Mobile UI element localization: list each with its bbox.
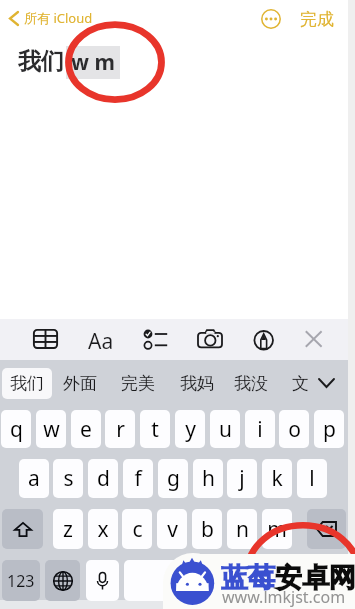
staticText: y xyxy=(185,415,196,444)
staticText: s xyxy=(63,464,74,493)
button[interactable]: 所有 iCloud xyxy=(6,6,96,30)
staticText: o xyxy=(288,415,301,444)
button[interactable]: Markup xyxy=(250,326,281,353)
button[interactable]: j xyxy=(227,459,257,498)
button[interactable]: u xyxy=(210,410,240,448)
staticText: r xyxy=(116,415,125,444)
button[interactable]: 文 xyxy=(288,368,313,399)
staticText: z xyxy=(63,515,73,544)
button[interactable]: m xyxy=(262,509,292,549)
button[interactable]: p xyxy=(314,410,344,448)
button[interactable]: a xyxy=(19,459,49,498)
button[interactable]: l xyxy=(297,459,327,498)
staticText: e xyxy=(80,415,92,444)
button[interactable]: d xyxy=(88,459,118,498)
button[interactable]: Numbers xyxy=(2,560,40,601)
button[interactable]: Dictate xyxy=(86,560,119,601)
button[interactable]: n xyxy=(227,509,257,549)
button[interactable]: 完成 xyxy=(297,6,337,33)
staticText: x xyxy=(97,515,109,544)
staticText: Aa xyxy=(88,327,114,356)
button[interactable]: y xyxy=(175,410,205,448)
button[interactable]: Text format xyxy=(85,326,116,353)
staticText: 123 xyxy=(7,570,35,592)
button[interactable]: Space xyxy=(124,560,275,601)
staticText: w xyxy=(43,415,60,444)
staticText: u xyxy=(219,415,232,444)
button[interactable]: x xyxy=(88,509,118,549)
button[interactable]: Backspace xyxy=(307,509,346,549)
staticText: g xyxy=(167,464,180,493)
staticText: 文 xyxy=(292,373,309,394)
staticText: a xyxy=(28,464,40,493)
staticText: www.lmkjst.com xyxy=(222,586,346,608)
button[interactable]: v xyxy=(157,509,187,549)
button[interactable]: r xyxy=(105,410,135,448)
button[interactable]: Close keyboard xyxy=(302,326,328,353)
staticText: 安卓网 xyxy=(275,561,355,595)
staticText: d xyxy=(97,464,110,493)
button[interactable]: i xyxy=(245,410,275,448)
button[interactable]: t xyxy=(140,410,170,448)
staticText: 完美 xyxy=(121,373,155,394)
button[interactable]: 我妈 xyxy=(176,368,218,399)
staticText: 外面 xyxy=(63,373,97,394)
staticText: 所有 iCloud xyxy=(24,9,93,27)
button[interactable]: Insert table xyxy=(30,326,61,353)
button[interactable]: w xyxy=(36,410,66,448)
staticText: t xyxy=(151,415,159,444)
button[interactable]: z xyxy=(53,509,83,549)
staticText: i xyxy=(257,415,263,444)
staticText: l xyxy=(309,464,315,493)
staticText: w m xyxy=(71,48,115,77)
staticText: 换行 xyxy=(297,571,329,591)
button[interactable]: 我没 xyxy=(230,368,272,399)
staticText: 我妈 xyxy=(180,373,214,394)
staticText: j xyxy=(239,464,245,493)
button[interactable]: Switch keyboard xyxy=(45,560,80,601)
button[interactable]: 我们 xyxy=(2,368,52,399)
button[interactable]: h xyxy=(193,459,223,498)
button[interactable]: b xyxy=(192,509,222,549)
staticText: p xyxy=(323,415,336,444)
button[interactable]: s xyxy=(53,459,83,498)
button[interactable]: More options xyxy=(260,8,281,29)
button[interactable]: Camera xyxy=(196,326,227,353)
staticText: 完成 xyxy=(300,9,334,30)
button[interactable]: Shift xyxy=(2,509,43,549)
staticText: c xyxy=(132,515,143,544)
button[interactable]: g xyxy=(158,459,188,498)
staticText: 蓝莓 xyxy=(221,561,275,595)
staticText: h xyxy=(202,464,215,493)
button[interactable]: More candidates xyxy=(313,370,339,396)
button[interactable]: Checklist xyxy=(140,326,171,353)
staticText: 我们 xyxy=(10,373,44,394)
staticText: f xyxy=(134,464,142,493)
staticText: k xyxy=(271,464,283,493)
button[interactable]: Return xyxy=(279,560,346,601)
staticText: v xyxy=(167,515,178,544)
staticText: m xyxy=(267,515,287,544)
button[interactable]: c xyxy=(122,509,152,549)
button[interactable]: q xyxy=(1,410,31,448)
button[interactable]: e xyxy=(71,410,101,448)
button[interactable]: 外面 xyxy=(59,368,101,399)
button[interactable]: 完美 xyxy=(117,368,159,399)
staticText: b xyxy=(201,515,214,544)
staticText: n xyxy=(236,515,249,544)
button[interactable]: f xyxy=(123,459,153,498)
staticText: 我没 xyxy=(234,373,268,394)
button[interactable]: o xyxy=(279,410,309,448)
button[interactable]: k xyxy=(262,459,292,498)
staticText: q xyxy=(10,415,23,444)
staticText: 我们 xyxy=(18,47,64,76)
